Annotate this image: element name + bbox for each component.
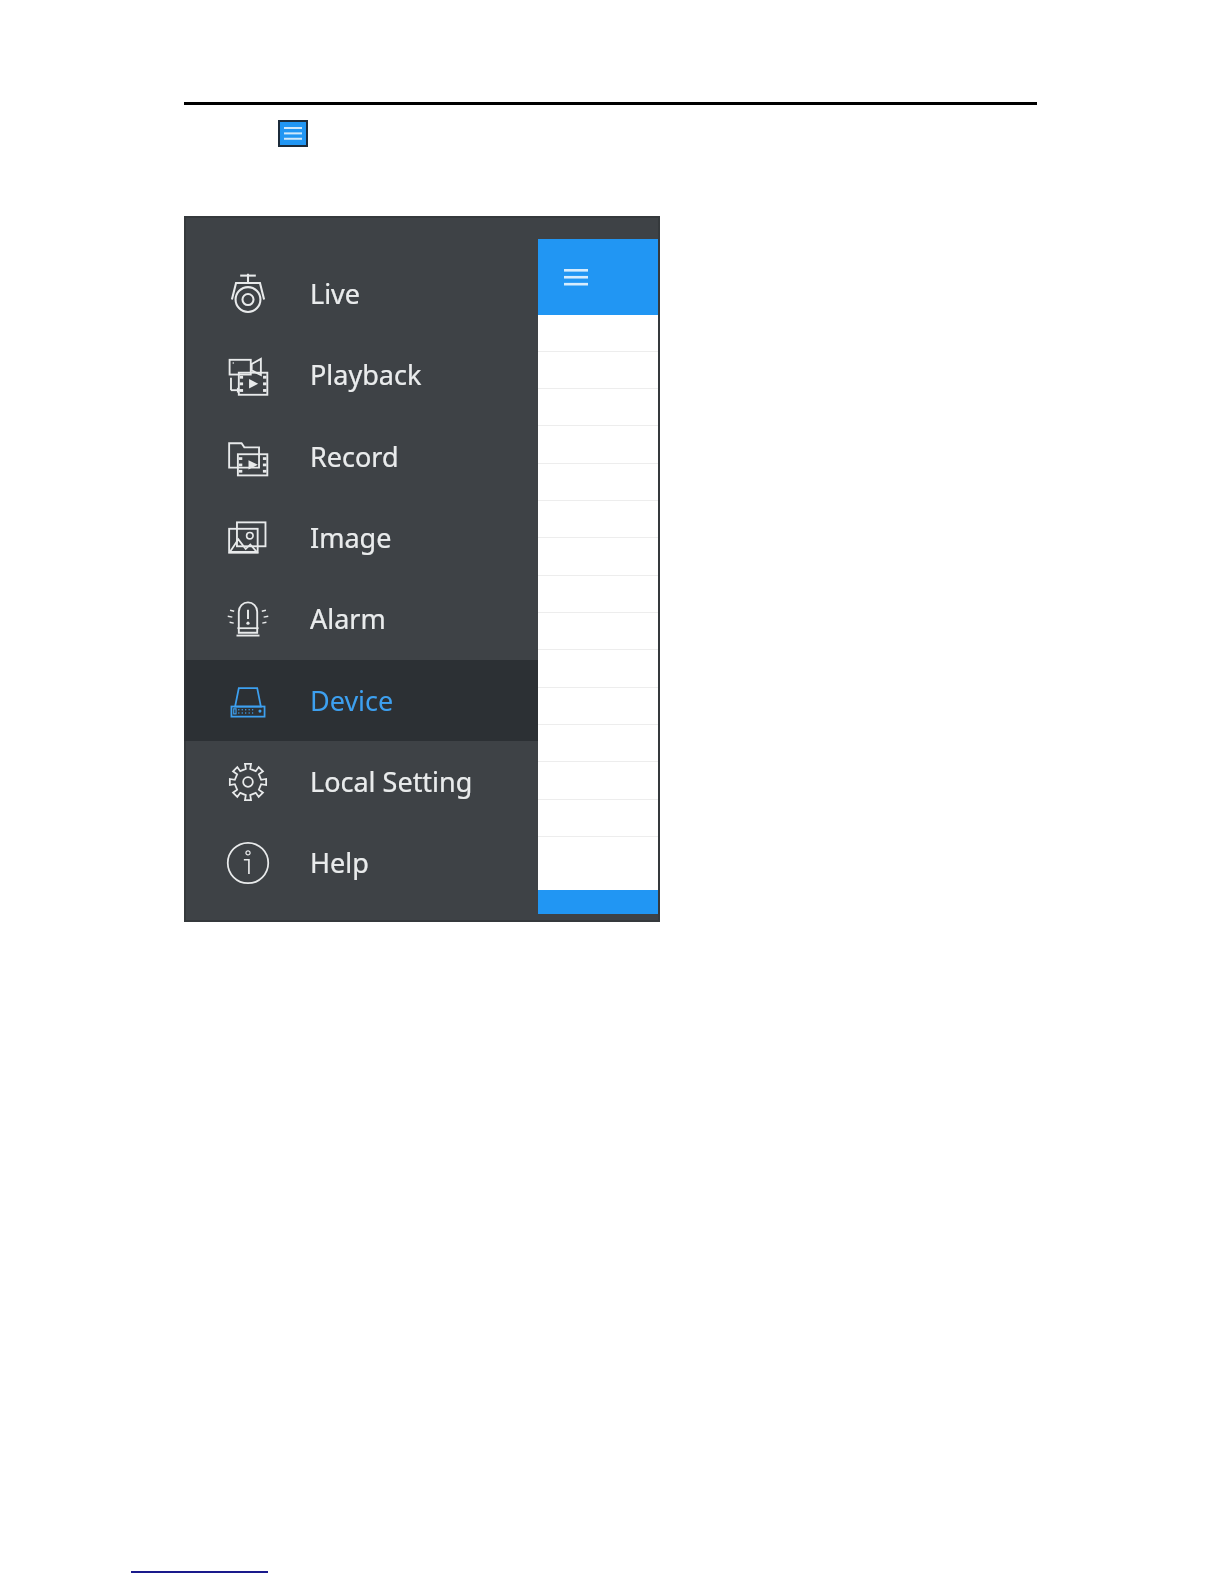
button[interactable]: Alarm xyxy=(184,578,538,659)
button[interactable]: Help xyxy=(184,822,538,903)
button[interactable]: Live xyxy=(184,253,538,334)
button[interactable]: Local Setting xyxy=(184,741,538,822)
staticText: Record xyxy=(310,438,399,475)
button[interactable]: Device xyxy=(184,660,538,741)
staticText: Playback xyxy=(310,356,422,393)
staticText: Live xyxy=(310,275,361,312)
button[interactable]: Playback xyxy=(184,334,538,415)
button[interactable]: Open navigation drawer xyxy=(538,239,658,315)
button[interactable]: Record xyxy=(184,416,538,497)
staticText: Alarm xyxy=(310,600,386,637)
staticText: Image xyxy=(310,519,392,556)
staticText: Device xyxy=(310,682,394,719)
button[interactable]: Menu xyxy=(278,120,308,147)
staticText: Local Setting xyxy=(310,763,473,800)
button[interactable]: Image xyxy=(184,497,538,578)
staticText: Help xyxy=(310,844,369,881)
